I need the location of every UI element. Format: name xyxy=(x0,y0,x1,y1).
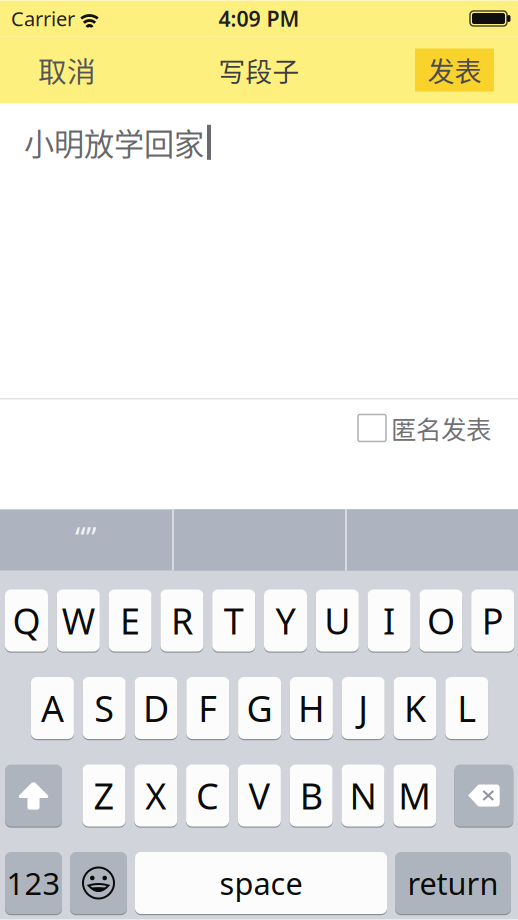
button[interactable]: S xyxy=(83,676,126,740)
staticText: M xyxy=(398,772,431,819)
staticText: P xyxy=(482,597,504,644)
button[interactable]: Q xyxy=(5,588,48,652)
staticText: R xyxy=(171,597,193,644)
button[interactable]: 取消 xyxy=(0,36,114,103)
staticText: I xyxy=(383,597,395,644)
staticText: X xyxy=(145,772,166,819)
staticText: U xyxy=(324,597,350,644)
button[interactable]: 123 xyxy=(5,851,62,915)
staticText: A xyxy=(41,684,64,732)
staticText: H xyxy=(298,684,325,732)
staticText: 小明放学回家 xyxy=(24,120,204,164)
button[interactable]: C xyxy=(186,763,229,827)
staticText: F xyxy=(198,684,217,732)
button[interactable]: Emoji xyxy=(70,851,127,915)
staticText: E xyxy=(120,597,140,644)
staticText: K xyxy=(404,684,426,732)
staticText: 匿名发表 xyxy=(391,409,491,446)
button[interactable]: P xyxy=(471,588,514,652)
staticText: space xyxy=(219,863,302,903)
button[interactable]: G xyxy=(238,676,281,740)
button[interactable]: F xyxy=(186,676,229,740)
button[interactable]: J xyxy=(342,676,385,740)
staticText: C xyxy=(196,772,219,819)
staticText: L xyxy=(457,684,476,732)
button[interactable]: Delete xyxy=(454,763,513,827)
button[interactable]: E xyxy=(109,588,152,652)
button[interactable]: “” xyxy=(0,509,172,570)
button[interactable]: W xyxy=(57,588,100,652)
button[interactable]: space xyxy=(135,851,387,915)
button[interactable]: I xyxy=(368,588,411,652)
button[interactable]: B xyxy=(290,763,333,827)
staticText: T xyxy=(224,597,244,644)
staticText: Q xyxy=(12,597,40,644)
button[interactable]: return xyxy=(395,851,511,915)
staticText: B xyxy=(300,772,323,819)
button[interactable]: 发表 xyxy=(415,48,494,91)
staticText: 123 xyxy=(6,863,60,903)
button[interactable]: V xyxy=(238,763,281,827)
button[interactable]: Shift xyxy=(5,763,62,827)
staticText: “” xyxy=(75,517,97,556)
button[interactable]: H xyxy=(290,676,333,740)
staticText: O xyxy=(427,597,455,644)
button[interactable]: 匿名发表 xyxy=(349,404,500,451)
button[interactable]: R xyxy=(160,588,203,652)
staticText: 4:09 PM xyxy=(218,4,299,33)
staticText: S xyxy=(94,684,114,732)
button[interactable]: U xyxy=(316,588,359,652)
button[interactable]: X xyxy=(134,763,177,827)
button[interactable]: T xyxy=(212,588,255,652)
button[interactable]: O xyxy=(419,588,462,652)
staticText: J xyxy=(358,684,368,732)
button[interactable]: K xyxy=(393,676,436,740)
button[interactable]: N xyxy=(341,763,384,827)
staticText: N xyxy=(349,772,376,819)
staticText: W xyxy=(62,597,95,644)
button[interactable]: D xyxy=(134,676,177,740)
staticText: G xyxy=(247,684,273,732)
button[interactable]: M xyxy=(393,763,436,827)
staticText: Carrier xyxy=(11,5,75,32)
button[interactable]: L xyxy=(445,676,488,740)
staticText: 写段子 xyxy=(218,51,299,89)
staticText: Z xyxy=(93,772,114,819)
staticText: V xyxy=(248,772,270,819)
staticText: D xyxy=(143,684,169,732)
staticText: 发表 xyxy=(427,50,481,90)
staticText: Y xyxy=(275,597,295,644)
button[interactable]: Y xyxy=(264,588,307,652)
staticText: return xyxy=(407,863,498,903)
staticText: 取消 xyxy=(38,49,96,91)
button[interactable]: Z xyxy=(82,763,125,827)
button[interactable]: A xyxy=(31,676,74,740)
